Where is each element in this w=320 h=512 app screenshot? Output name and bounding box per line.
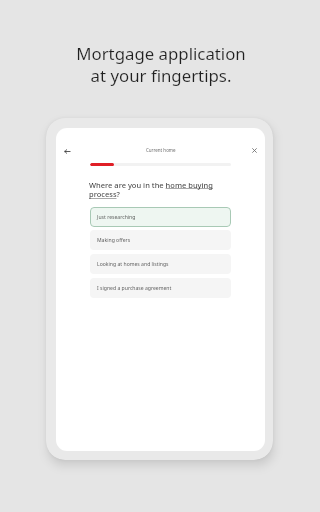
button[interactable]: Just researching <box>90 207 231 227</box>
staticText: Making offers <box>97 237 131 244</box>
button[interactable]: Back <box>61 145 73 157</box>
button[interactable]: Close <box>248 144 260 156</box>
button[interactable]: I signed a purchase agreement <box>90 278 231 298</box>
button[interactable]: Looking at homes and listings <box>90 254 231 274</box>
button[interactable]: Making offers <box>90 230 231 250</box>
staticText: Looking at homes and listings <box>97 261 169 268</box>
staticText: Where are you in the home buying process… <box>89 180 234 200</box>
staticText: Current home <box>146 147 176 153</box>
staticText: Mortgage application at your fingertips. <box>76 42 246 87</box>
staticText: I signed a purchase agreement <box>97 285 172 292</box>
staticText: Just researching <box>97 214 136 221</box>
